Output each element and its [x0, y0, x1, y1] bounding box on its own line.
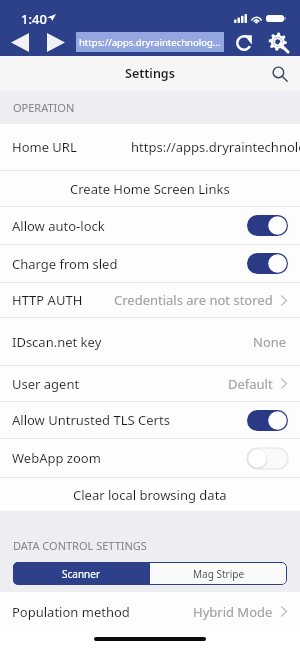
button[interactable]: User agent [0, 366, 300, 401]
button[interactable]: Clear local browsing data [0, 478, 300, 511]
staticText: Create Home Screen Links [70, 180, 230, 198]
button[interactable]: Charge from sled [0, 245, 300, 282]
staticText: WebApp zoom [12, 449, 101, 467]
button[interactable]: https://apps.dryraintechnolog… [76, 32, 224, 52]
button[interactable]: Settings [267, 28, 289, 56]
button[interactable]: Create Home Screen Links [0, 171, 300, 206]
staticText: Allow auto-lock [12, 217, 105, 235]
button[interactable]: Allow Untrusted TLS Certs [0, 402, 300, 438]
staticText: Settings [125, 65, 175, 82]
button[interactable]: Mag Stripe [150, 562, 287, 585]
button[interactable]: Allow auto-lock [0, 207, 300, 244]
button[interactable]: Forward [47, 28, 65, 56]
staticText: Default [228, 375, 273, 393]
staticText: 1:40 [21, 10, 47, 28]
staticText: Scanner [62, 567, 101, 581]
button[interactable]: Reload [234, 28, 254, 56]
staticText: IDscan.net key [12, 333, 102, 351]
staticText: HTTP AUTH [12, 291, 83, 309]
staticText: Charge from sled [12, 255, 118, 273]
staticText: Clear local browsing data [73, 486, 227, 504]
staticText: Population method [12, 603, 130, 621]
staticText: https://apps.dryraintechnolog… [79, 36, 221, 49]
button[interactable]: Search [268, 62, 292, 86]
button[interactable]: Home URL [0, 124, 300, 170]
staticText: Hybrid Mode [193, 603, 273, 621]
staticText: Mag Stripe [193, 567, 245, 581]
staticText: Home URL [12, 138, 77, 156]
staticText: OPERATION [13, 100, 75, 115]
staticText: DATA CONTROL SETTINGS [13, 538, 147, 553]
button[interactable]: Scanner [13, 562, 150, 585]
staticText: Credentials are not stored [114, 291, 273, 309]
staticText: Allow Untrusted TLS Certs [12, 411, 170, 429]
button[interactable]: Population method [0, 592, 300, 631]
button[interactable]: HTTP AUTH [0, 283, 300, 317]
staticText: None [253, 333, 287, 351]
staticText: User agent [12, 375, 80, 393]
button[interactable]: Back [11, 28, 29, 56]
button[interactable]: WebApp zoom [0, 439, 300, 477]
staticText: https://apps.dryraintechnology.com [131, 138, 300, 156]
button[interactable]: IDscan.net key [0, 318, 300, 365]
